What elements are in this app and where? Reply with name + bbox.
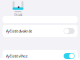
button[interactable]: Vyčistit dvakrát <box>3 25 78 37</box>
staticText: Vyčistit vlhce <box>6 53 28 59</box>
button[interactable]: Vyčistit vlhce <box>3 50 78 60</box>
staticText: Obývák <box>14 13 22 17</box>
staticText: Vyčistit dvakrát <box>6 28 32 34</box>
